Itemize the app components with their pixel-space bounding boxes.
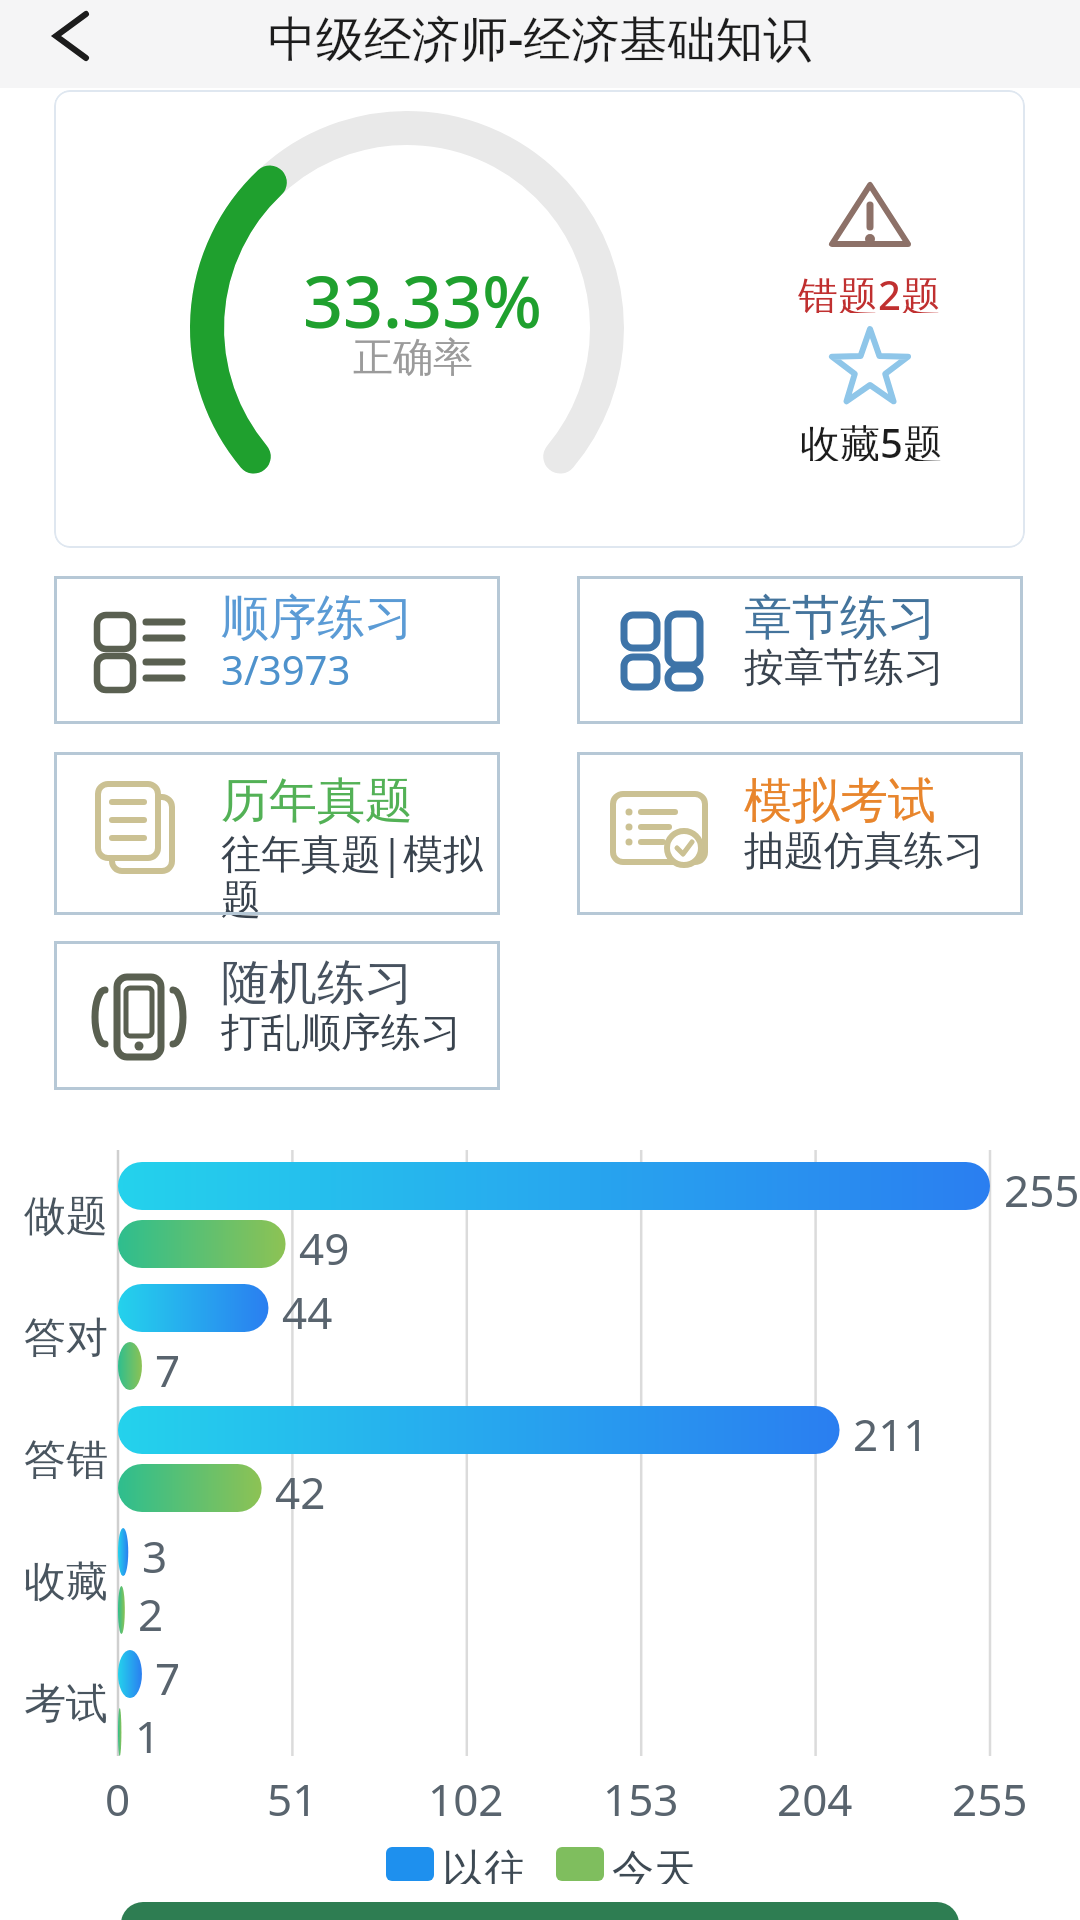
staticText: 33.33% (303, 253, 542, 333)
staticText: 按章节练习 (744, 642, 944, 692)
staticText: 打乱顺序练习 (221, 1007, 461, 1057)
staticText: 模拟考试 (744, 771, 936, 831)
staticText: 7 (155, 1648, 181, 1700)
staticText: 102 (428, 1769, 504, 1821)
button[interactable]: 历年真题 (54, 752, 500, 915)
staticText: 42 (275, 1462, 326, 1514)
staticText: 255 (952, 1769, 1028, 1821)
button[interactable]: 随机练习 (54, 941, 500, 1090)
staticText: 中级经济师-经济基础知识 (268, 5, 812, 71)
staticText: 51 (267, 1769, 318, 1821)
staticText: 49 (299, 1218, 350, 1270)
button[interactable]: 顺序练习 (54, 576, 500, 724)
staticText: 153 (603, 1769, 679, 1821)
staticText: 211 (853, 1404, 929, 1456)
staticText: 历年真题 (221, 771, 413, 831)
staticText: 今天 (612, 1844, 696, 1884)
staticText: 收藏5题 (800, 415, 943, 461)
staticText: 章节练习 (744, 588, 936, 648)
staticText: 往年真题|模拟题 (221, 825, 485, 924)
staticText: 错题2题 (798, 267, 941, 313)
staticText: 0 (105, 1769, 131, 1821)
staticText: 2 (138, 1584, 164, 1636)
staticText: 255 (1004, 1160, 1080, 1212)
staticText: 答错 (24, 1434, 108, 1486)
staticText: 1 (135, 1706, 161, 1758)
staticText: 考试 (24, 1678, 108, 1730)
button[interactable]: 模拟考试 (577, 752, 1023, 915)
staticText: 顺序练习 (221, 588, 413, 648)
button[interactable]: 章节练习 (577, 576, 1023, 724)
staticText: 做题 (24, 1190, 108, 1242)
staticText: 随机练习 (221, 953, 413, 1013)
staticText: 抽题仿真练习 (744, 825, 984, 875)
staticText: 3 (142, 1526, 168, 1578)
staticText: 44 (282, 1282, 333, 1334)
staticText: 3/3973 (221, 642, 351, 696)
button[interactable] (121, 1902, 959, 1920)
staticText: 7 (155, 1340, 181, 1392)
staticText: 204 (777, 1769, 853, 1821)
staticText: 收藏 (24, 1556, 108, 1608)
button[interactable] (38, 0, 106, 78)
staticText: 正确率 (353, 332, 473, 378)
staticText: 以往 (442, 1844, 526, 1884)
staticText: 答对 (24, 1312, 108, 1364)
